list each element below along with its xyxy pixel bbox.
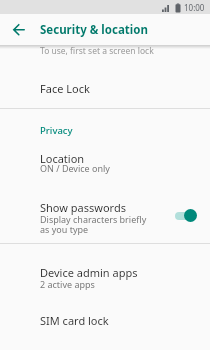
staticText: Display characters briefly	[40, 213, 147, 225]
staticText: Privacy	[40, 124, 73, 137]
staticText: as you type	[40, 223, 89, 235]
staticText: 10:00	[184, 2, 205, 13]
staticText: Location	[40, 151, 85, 166]
staticText: 2 active apps	[40, 278, 95, 290]
staticText: Face Lock	[40, 81, 90, 96]
staticText: Device admin apps	[40, 265, 138, 280]
staticText: SIM card lock	[40, 313, 109, 328]
staticText: To use, first set a screen lock	[40, 45, 154, 57]
staticText: Show passwords	[40, 200, 126, 215]
staticText: ON / Device only	[40, 162, 110, 174]
staticText: Security & location	[40, 22, 148, 38]
